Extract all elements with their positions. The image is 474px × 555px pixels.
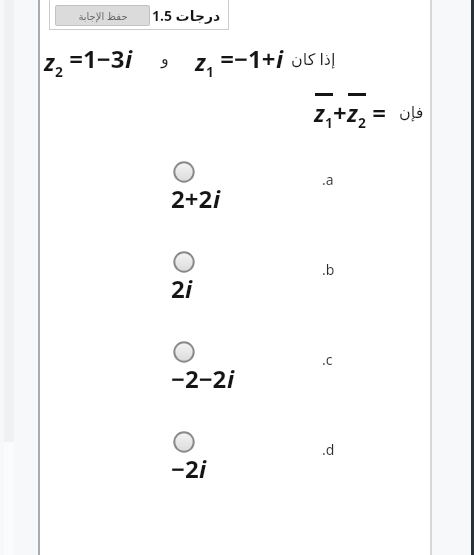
staticText: و bbox=[161, 49, 169, 68]
staticText: i bbox=[213, 182, 221, 215]
staticText: 2+2 bbox=[171, 182, 213, 215]
button[interactable]: −2 bbox=[0, 431, 474, 521]
staticText: .c bbox=[322, 350, 333, 369]
staticText: i bbox=[276, 42, 284, 75]
staticText: z bbox=[347, 97, 358, 128]
staticText: −2−2 bbox=[171, 362, 227, 395]
staticText: 1 bbox=[206, 62, 214, 81]
staticText: 2 bbox=[358, 113, 366, 132]
staticText: i bbox=[185, 272, 193, 305]
staticText: =−1+ bbox=[214, 42, 276, 75]
button[interactable]: حفظ الإجابة bbox=[55, 5, 150, 26]
button[interactable]: 2 bbox=[0, 251, 474, 341]
staticText: 1.5 درجات bbox=[152, 6, 221, 25]
staticText: حفظ الإجابة bbox=[78, 9, 128, 23]
staticText: 2 bbox=[171, 272, 185, 305]
staticText: =1−3 bbox=[63, 42, 125, 75]
staticText: إذا كان bbox=[291, 48, 336, 70]
staticText: z bbox=[314, 97, 325, 128]
staticText: z bbox=[195, 46, 206, 77]
staticText: i bbox=[199, 452, 207, 485]
staticText: = bbox=[366, 96, 393, 129]
staticText: i bbox=[125, 42, 133, 75]
staticText: z bbox=[44, 46, 55, 77]
staticText: .d bbox=[322, 440, 335, 459]
button[interactable]: −2−2 bbox=[0, 341, 474, 431]
staticText: .b bbox=[322, 260, 335, 279]
staticText: 1 bbox=[325, 113, 333, 132]
staticText: 2 bbox=[55, 62, 63, 81]
staticText: −2 bbox=[171, 452, 199, 485]
button[interactable]: 2+2 bbox=[0, 161, 474, 251]
staticText: .a bbox=[322, 170, 334, 189]
staticText: i bbox=[227, 362, 235, 395]
staticText: فإن bbox=[399, 103, 424, 122]
staticText: + bbox=[333, 96, 347, 129]
